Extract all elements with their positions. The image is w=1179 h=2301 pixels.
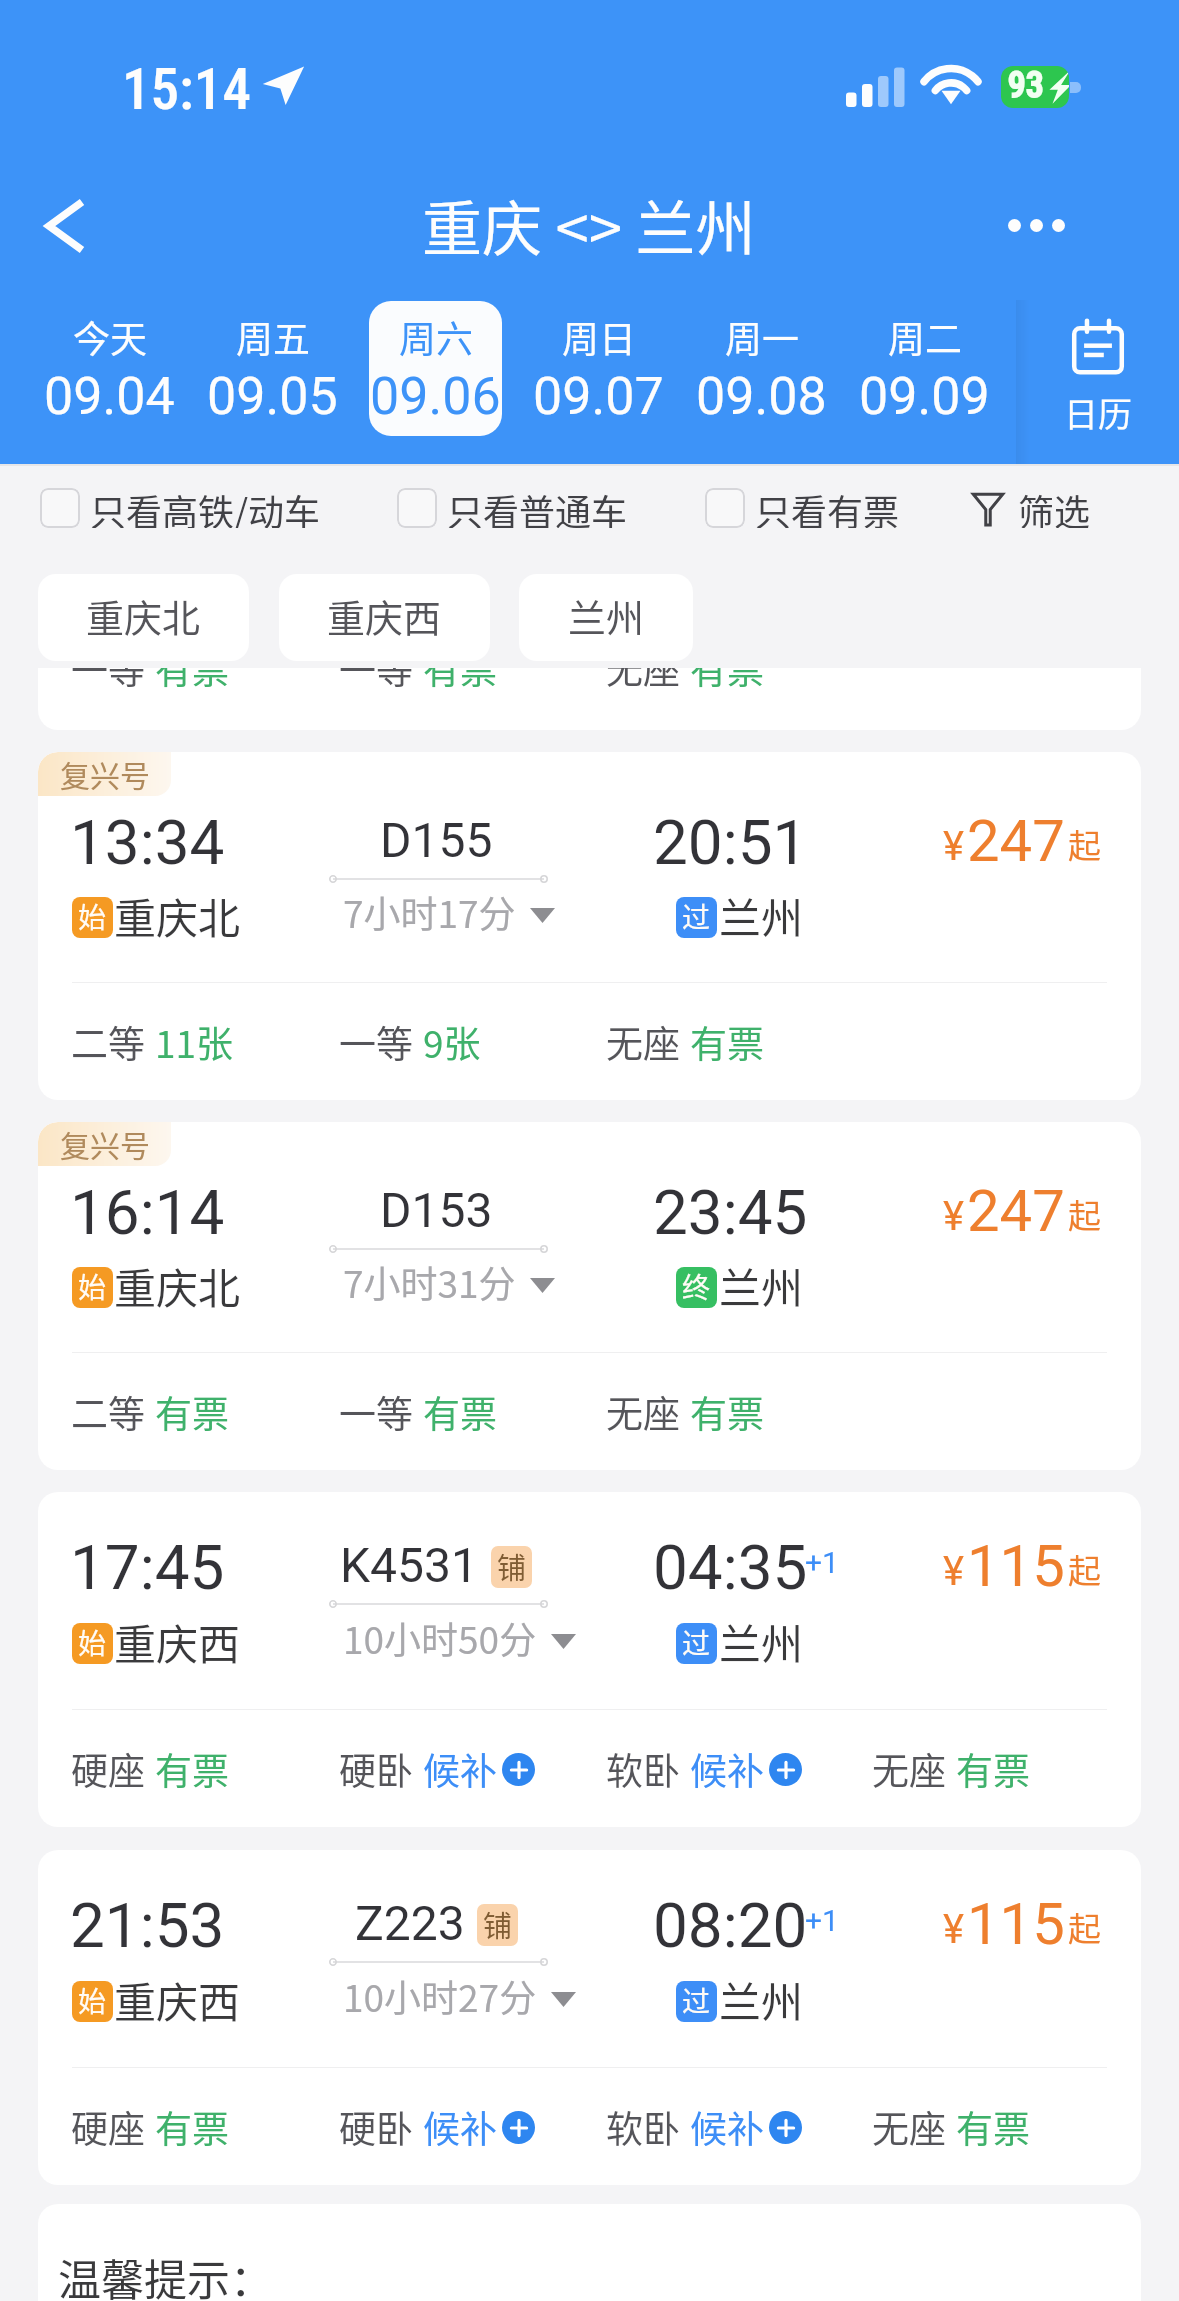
staticText: 只看有票 <box>755 484 900 528</box>
staticText: 日历 <box>1064 388 1132 437</box>
staticText: 过 <box>682 1623 711 1663</box>
button[interactable]: 周六 <box>369 301 502 436</box>
staticText: 候补 <box>423 1742 497 1796</box>
staticText: 9张 <box>423 1015 481 1069</box>
button[interactable]: 今天 <box>43 301 176 436</box>
staticText: 有票 <box>423 668 497 695</box>
staticText: 115 <box>967 1890 1065 1958</box>
button[interactable]: 复兴号 <box>38 1122 1141 1470</box>
staticText: 终 <box>682 1267 711 1307</box>
staticText: 重庆北 <box>86 588 201 643</box>
button[interactable]: 周二 <box>858 301 991 436</box>
staticText: D153 <box>380 1182 493 1238</box>
staticText: 重庆北 <box>114 885 241 946</box>
staticText: 09.07 <box>533 366 664 427</box>
staticText: 115 <box>967 1532 1065 1600</box>
staticText: 有票 <box>155 668 229 695</box>
staticText: 兰州 <box>719 1255 804 1316</box>
staticText: 04:35 <box>653 1531 808 1604</box>
staticText: 09.06 <box>370 366 501 427</box>
staticText: 周五 <box>236 310 310 364</box>
button[interactable]: 只看普通车 <box>397 486 628 530</box>
staticText: 无座 <box>606 1385 680 1439</box>
staticText: 兰州 <box>719 1969 804 2030</box>
staticText: 有票 <box>690 668 764 695</box>
staticText: 始 <box>78 1623 107 1663</box>
staticText: 247 <box>967 807 1065 875</box>
staticText: 08:20 <box>653 1889 808 1962</box>
staticText: 铺 <box>483 1904 513 1945</box>
button[interactable]: 筛选 <box>972 486 1091 530</box>
staticText: 兰州 <box>568 588 645 643</box>
staticText: 有票 <box>155 1742 229 1796</box>
staticText: 有票 <box>956 1742 1030 1796</box>
staticText: ¥ <box>943 823 965 870</box>
staticText: 周二 <box>888 310 962 364</box>
button[interactable]: 17:45 <box>38 1492 1141 1827</box>
button[interactable]: Calendar <box>1016 300 1179 464</box>
staticText: 二等 <box>71 1015 145 1069</box>
staticText: 重庆 <> 兰州 <box>422 181 756 268</box>
button[interactable]: 只看有票 <box>705 486 900 530</box>
button[interactable]: 重庆北 <box>38 574 249 661</box>
staticText: 周日 <box>562 310 636 364</box>
staticText: ¥ <box>943 1193 965 1240</box>
staticText: 09.04 <box>44 366 175 427</box>
staticText: 周一 <box>725 310 799 364</box>
staticText: 硬座 <box>71 1742 145 1796</box>
staticText: 起 <box>1068 1545 1101 1593</box>
staticText: 软卧 <box>606 2100 680 2154</box>
staticText: 一等 <box>339 1015 413 1069</box>
staticText: 一等 <box>71 668 145 695</box>
staticText: 候补 <box>423 2100 497 2154</box>
staticText: 无座 <box>872 2100 946 2154</box>
button[interactable]: 21:53 <box>38 1850 1141 2185</box>
staticText: 重庆北 <box>114 1255 241 1316</box>
button[interactable]: 复兴号 <box>38 752 1141 1100</box>
staticText: 硬卧 <box>339 1742 413 1796</box>
staticText: 一等 <box>339 1385 413 1439</box>
staticText: 只看普通车 <box>447 484 628 528</box>
staticText: 起 <box>1068 1903 1101 1951</box>
button[interactable]: 周五 <box>206 301 339 436</box>
staticText: 09.08 <box>696 366 827 427</box>
staticText: 16:14 <box>70 1176 225 1249</box>
staticText: 始 <box>78 897 107 937</box>
staticText: 起 <box>1068 1190 1101 1238</box>
staticText: ¥ <box>943 1906 965 1953</box>
staticText: 今天 <box>73 310 147 364</box>
staticText: 候补 <box>690 1742 764 1796</box>
staticText: 无座 <box>606 1015 680 1069</box>
button[interactable]: 只看高铁/动车 <box>40 486 321 530</box>
staticText: 重庆西 <box>114 1969 241 2030</box>
staticText: 筛选 <box>1018 484 1091 528</box>
button[interactable]: 温馨提示： <box>38 2204 1141 2301</box>
button[interactable]: 兰州 <box>519 574 693 661</box>
button[interactable]: 周一 <box>695 301 828 436</box>
staticText: 11张 <box>155 1015 234 1069</box>
staticText: +1 <box>805 1903 839 1938</box>
staticText: 有票 <box>690 1015 764 1069</box>
staticText: 铺 <box>497 1546 527 1587</box>
staticText: 过 <box>682 1981 711 2021</box>
staticText: 247 <box>967 1177 1065 1245</box>
staticText: 15:14 <box>122 56 251 123</box>
staticText: 兰州 <box>719 1611 804 1672</box>
button[interactable]: 周日 <box>532 301 665 436</box>
staticText: ¥ <box>943 1548 965 1595</box>
staticText: 93 <box>1007 66 1044 107</box>
button[interactable]: More options <box>985 182 1085 268</box>
staticText: 20:51 <box>653 806 808 879</box>
staticText: 无座 <box>606 668 680 695</box>
staticText: 有票 <box>956 2100 1030 2154</box>
staticText: K4531 <box>340 1537 479 1593</box>
staticText: 有票 <box>423 1385 497 1439</box>
staticText: 兰州 <box>719 885 804 946</box>
button[interactable]: Back <box>7 165 87 251</box>
staticText: 17:45 <box>70 1531 225 1604</box>
staticText: 有票 <box>690 1385 764 1439</box>
staticText: 始 <box>78 1981 107 2021</box>
button[interactable]: 一等 <box>38 668 1141 730</box>
staticText: Z223 <box>355 1895 465 1951</box>
button[interactable]: 重庆西 <box>279 574 490 661</box>
